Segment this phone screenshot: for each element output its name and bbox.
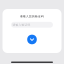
button[interactable]: 请输入验证码	[11, 22, 53, 28]
staticText: 请输入验证码	[13, 23, 31, 26]
staticText: 请输入您的验证码	[20, 15, 44, 18]
button[interactable]: Continue	[27, 35, 37, 44]
